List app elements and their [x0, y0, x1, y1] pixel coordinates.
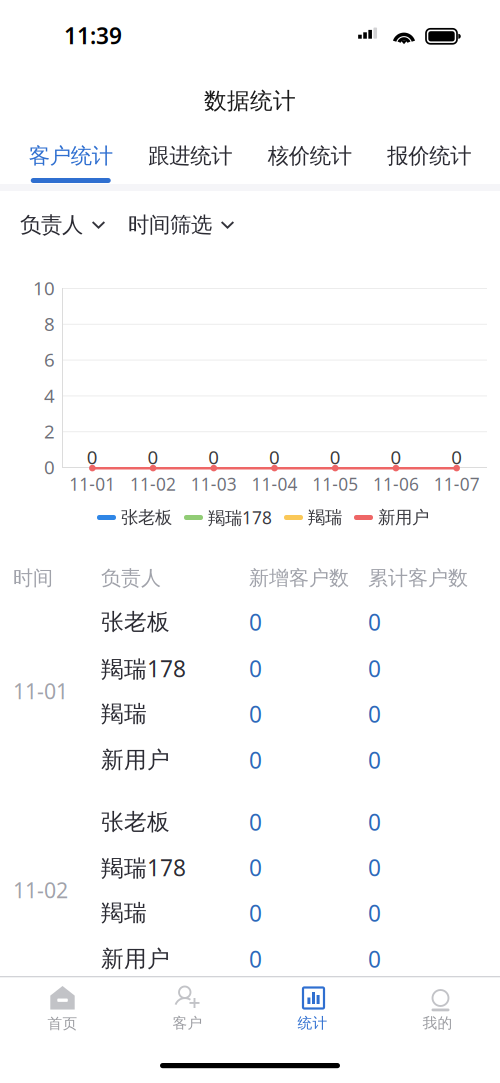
button[interactable]: 统计: [250, 975, 375, 1045]
staticText: 羯瑞178: [101, 852, 186, 882]
button[interactable]: 客户: [125, 975, 250, 1045]
button[interactable]: 时间筛选: [128, 212, 234, 238]
button[interactable]: 羯瑞178: [0, 653, 500, 683]
button[interactable]: 新用户: [0, 745, 500, 775]
staticText: 11-01: [13, 677, 68, 705]
staticText: 0: [249, 653, 262, 683]
button[interactable]: 核价统计: [250, 140, 369, 185]
staticText: 羯瑞: [308, 507, 342, 528]
button[interactable]: 负责人: [20, 212, 105, 238]
staticText: 0: [249, 699, 262, 729]
button[interactable]: 张老板: [0, 807, 500, 837]
staticText: 0: [148, 445, 159, 469]
staticText: 11-07: [434, 472, 480, 495]
staticText: 时间: [13, 566, 53, 590]
staticText: 0: [330, 445, 341, 469]
staticText: 0: [390, 445, 401, 469]
button[interactable]: 客户统计: [11, 140, 130, 185]
staticText: 0: [249, 898, 262, 928]
staticText: 0: [87, 445, 98, 469]
staticText: 羯瑞178: [101, 653, 186, 683]
staticText: 负责人: [20, 212, 83, 238]
staticText: 数据统计: [204, 87, 296, 115]
staticText: 0: [249, 944, 262, 974]
staticText: 新用户: [101, 746, 170, 774]
button[interactable]: 羯瑞178: [0, 852, 500, 882]
staticText: 11-01: [69, 472, 115, 495]
staticText: 我的: [422, 1014, 452, 1032]
staticText: 0: [269, 445, 280, 469]
staticText: 2: [44, 419, 55, 444]
staticText: 首页: [47, 1014, 77, 1032]
staticText: 10: [33, 276, 55, 300]
button[interactable]: 报价统计: [369, 140, 489, 185]
staticText: 跟进统计: [148, 143, 232, 169]
staticText: 0: [208, 445, 219, 469]
staticText: 客户: [172, 1014, 202, 1032]
button[interactable]: 跟进统计: [130, 140, 250, 185]
button[interactable]: 新用户: [0, 944, 500, 974]
staticText: 11-04: [251, 472, 297, 495]
staticText: 11-02: [130, 472, 176, 495]
staticText: 羯瑞: [101, 700, 147, 728]
staticText: 0: [249, 807, 262, 837]
staticText: 11:39: [64, 20, 122, 50]
staticText: 新增客户数: [249, 566, 349, 590]
button[interactable]: 张老板: [0, 607, 500, 637]
staticText: 张老板: [101, 808, 170, 836]
button[interactable]: 我的: [375, 975, 500, 1045]
staticText: 0: [368, 653, 381, 683]
staticText: 0: [249, 607, 262, 637]
staticText: 客户统计: [29, 143, 113, 169]
staticText: 0: [249, 852, 262, 882]
staticText: 报价统计: [387, 143, 471, 169]
staticText: 0: [451, 445, 462, 469]
staticText: 张老板: [101, 608, 170, 636]
staticText: 11-03: [191, 472, 237, 495]
staticText: 0: [368, 699, 381, 729]
staticText: 0: [368, 852, 381, 882]
staticText: 0: [368, 898, 381, 928]
staticText: 0: [368, 944, 381, 974]
staticText: 11-05: [312, 472, 358, 495]
staticText: 负责人: [101, 566, 161, 590]
staticText: 统计: [297, 1014, 327, 1032]
staticText: 11-06: [373, 472, 419, 495]
staticText: 6: [44, 347, 55, 372]
staticText: 0: [44, 455, 55, 479]
staticText: 0: [368, 807, 381, 837]
button[interactable]: 羯瑞: [0, 898, 500, 928]
staticText: 新用户: [101, 945, 170, 973]
staticText: 时间筛选: [128, 212, 212, 238]
staticText: 核价统计: [268, 143, 352, 169]
staticText: 张老板: [121, 507, 172, 528]
staticText: 0: [368, 745, 381, 775]
staticText: 0: [368, 607, 381, 637]
staticText: 8: [44, 311, 55, 336]
staticText: 4: [44, 383, 55, 408]
staticText: 羯瑞: [101, 899, 147, 927]
button[interactable]: 羯瑞: [0, 699, 500, 729]
staticText: 新用户: [378, 507, 429, 528]
staticText: 羯瑞178: [208, 506, 272, 529]
staticText: 11-02: [13, 876, 68, 904]
staticText: 0: [249, 745, 262, 775]
button[interactable]: 首页: [0, 975, 125, 1045]
staticText: 累计客户数: [368, 566, 468, 590]
